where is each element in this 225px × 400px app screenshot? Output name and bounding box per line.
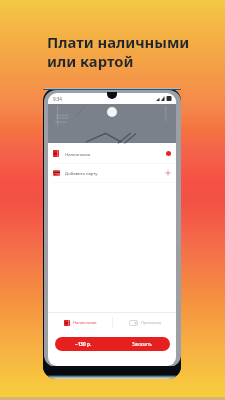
staticText: Наличными xyxy=(73,320,97,325)
staticText: Плати наличными или картой xyxy=(47,32,190,71)
button[interactable]: ~130 р. xyxy=(55,337,170,351)
button[interactable]: Наличными xyxy=(48,313,112,332)
button[interactable]: Промокод xyxy=(113,313,176,332)
staticText: Наличными xyxy=(65,151,91,157)
staticText: Заказать xyxy=(132,341,152,347)
staticText: Промокод xyxy=(141,320,161,325)
staticText: Добавить карту xyxy=(65,170,98,176)
button[interactable]: Добавить карту xyxy=(53,163,171,182)
button[interactable]: Наличными xyxy=(53,144,171,163)
staticText: ~130 р. xyxy=(75,341,92,347)
other: Выбрано xyxy=(166,151,171,156)
other: Моё местоположение xyxy=(107,107,117,117)
other: Добавить карту xyxy=(165,170,171,176)
staticText: 9:34 xyxy=(53,96,62,102)
